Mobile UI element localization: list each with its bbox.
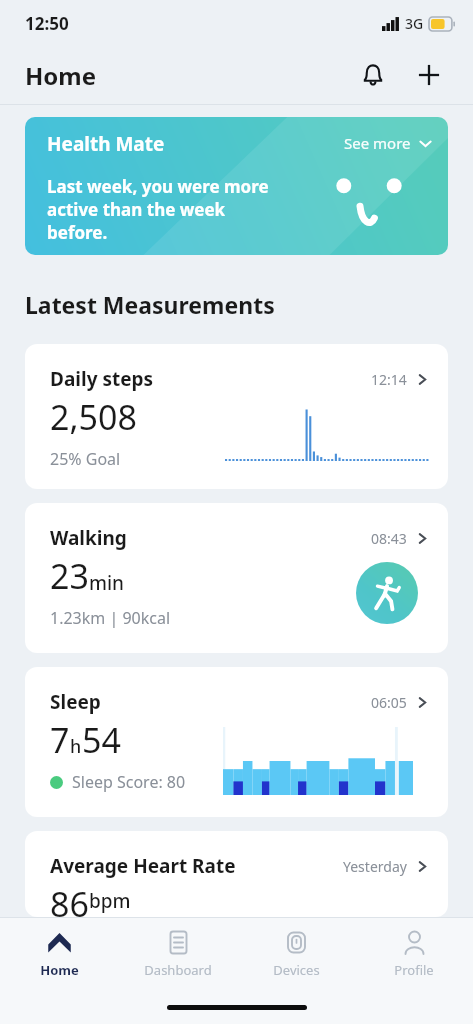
staticText: bpm <box>89 888 131 914</box>
button[interactable]: See more <box>344 131 432 153</box>
button[interactable]: Walking <box>25 503 448 653</box>
staticText: See more <box>344 133 411 153</box>
staticText: 25% Goal <box>50 448 121 470</box>
staticText: Home <box>40 961 79 979</box>
staticText: Sleep Score: 80 <box>72 771 186 793</box>
staticText: 23 <box>50 553 89 599</box>
staticText: 3G <box>405 14 424 33</box>
button[interactable]: Sleep <box>25 667 448 817</box>
button[interactable]: Home <box>0 918 119 990</box>
staticText: Health Mate <box>47 131 344 157</box>
staticText: Home <box>25 59 97 92</box>
staticText: Sleep <box>50 689 371 715</box>
staticText: min <box>89 570 125 596</box>
staticText: 06:05 <box>371 693 407 712</box>
button[interactable]: Devices <box>237 918 355 990</box>
button[interactable]: Add <box>405 51 453 99</box>
staticText: 1.23km | 90kcal <box>50 607 171 629</box>
staticText: Latest Measurements <box>25 289 275 320</box>
staticText: Daily steps <box>50 366 371 392</box>
staticText: 54 <box>82 717 121 763</box>
button[interactable]: Notifications <box>349 51 397 99</box>
staticText: Walking <box>50 525 371 551</box>
staticText: 86 <box>50 881 89 917</box>
staticText: Average Heart Rate <box>50 853 343 879</box>
staticText: Profile <box>394 961 434 979</box>
staticText: Dashboard <box>144 961 212 979</box>
staticText: 12:50 <box>25 12 69 35</box>
staticText: Yesterday <box>343 857 407 876</box>
staticText: Devices <box>273 961 320 979</box>
staticText: 7 <box>50 717 70 763</box>
staticText: 2,508 <box>50 394 137 440</box>
button[interactable]: Average Heart Rate <box>25 831 448 917</box>
staticText: 12:14 <box>371 370 407 389</box>
button[interactable]: Daily steps <box>25 344 448 489</box>
staticText: h <box>70 734 82 759</box>
button[interactable]: Profile <box>355 918 473 990</box>
staticText: Last week, you were more active than the… <box>47 175 312 244</box>
staticText: 08:43 <box>371 529 407 548</box>
button[interactable]: Dashboard <box>119 918 237 990</box>
button[interactable]: Health Mate <box>25 117 448 255</box>
